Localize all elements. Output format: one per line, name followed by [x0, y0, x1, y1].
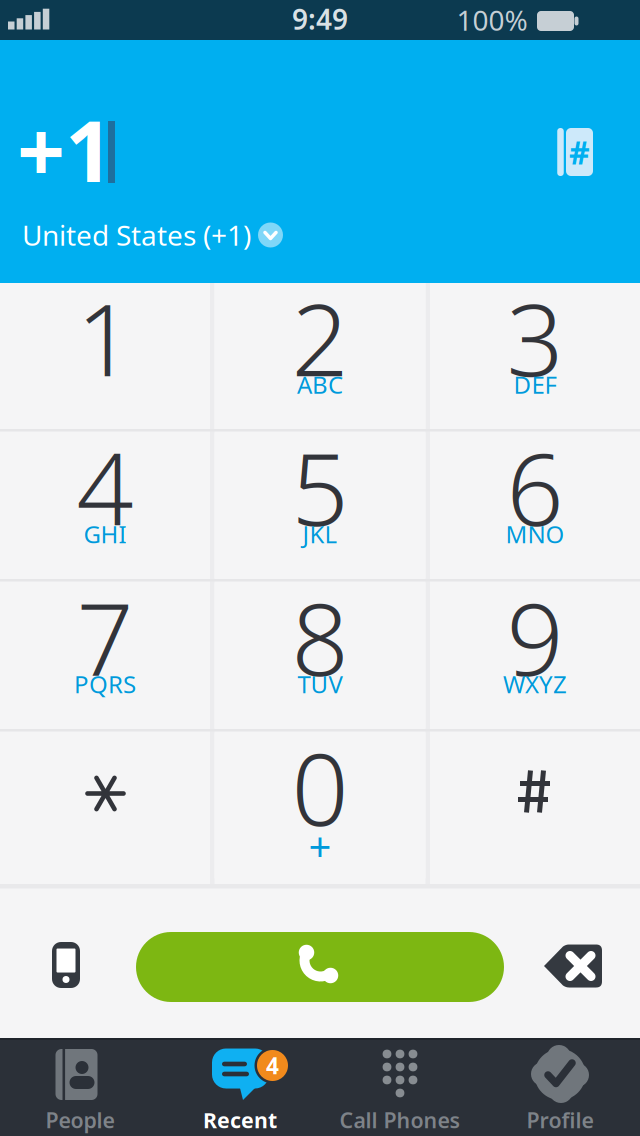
staticText: TUV	[297, 668, 342, 700]
button[interactable]: 5	[214, 432, 425, 578]
staticText: 1	[76, 271, 133, 404]
button[interactable]: Call mobile	[33, 925, 99, 1005]
staticText: ABC	[297, 369, 343, 400]
button[interactable]: Pound	[430, 732, 640, 878]
staticText: JKL	[302, 518, 337, 550]
staticText: WXYZ	[503, 668, 567, 700]
staticText: GHI	[83, 518, 126, 550]
button[interactable]: Call Phones	[320, 1038, 480, 1136]
button[interactable]: 8	[214, 582, 425, 728]
staticText: 0	[291, 721, 348, 853]
staticText: 4	[266, 1050, 279, 1080]
staticText: #	[569, 131, 590, 173]
staticText: +1	[17, 94, 113, 205]
staticText: 100%	[456, 1, 527, 39]
button[interactable]: People	[0, 1038, 160, 1136]
button[interactable]: Delete	[537, 940, 609, 991]
staticText: 7	[76, 571, 133, 703]
staticText: 6	[506, 421, 563, 553]
staticText: DEF	[513, 369, 556, 400]
staticText: Profile	[526, 1106, 593, 1134]
staticText: +	[308, 819, 331, 872]
button[interactable]: United States (+1)	[0, 213, 360, 257]
staticText: Recent	[203, 1106, 277, 1134]
button[interactable]: Profile	[480, 1038, 640, 1136]
button[interactable]: 7	[0, 582, 210, 728]
button[interactable]: 0	[214, 732, 425, 878]
staticText: PQRS	[74, 668, 136, 700]
staticText: 8	[291, 571, 348, 703]
button[interactable]: Star	[0, 732, 210, 878]
staticText: Call Phones	[339, 1106, 460, 1134]
button[interactable]: 6	[430, 432, 640, 578]
staticText: 4	[76, 421, 133, 553]
staticText: MNO	[505, 518, 564, 550]
button[interactable]: 4	[0, 432, 210, 578]
button[interactable]: 9	[430, 582, 640, 728]
button[interactable]: Call	[136, 932, 504, 1002]
staticText: 3	[506, 271, 563, 404]
staticText: 5	[291, 421, 348, 553]
staticText: 2	[291, 271, 348, 404]
button[interactable]: 3	[430, 283, 640, 429]
staticText: People	[45, 1106, 114, 1134]
button[interactable]: 1	[0, 283, 210, 429]
button[interactable]: 4	[160, 1038, 320, 1136]
staticText: United States (+1)	[22, 216, 251, 254]
staticText: 9	[506, 571, 563, 703]
button[interactable]: 2	[214, 283, 425, 429]
button[interactable]: Contacts	[547, 116, 607, 188]
staticText: 9:49	[292, 0, 348, 38]
